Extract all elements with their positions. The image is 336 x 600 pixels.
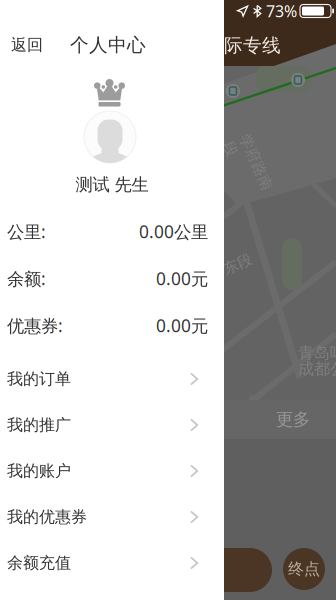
staticText: 优惠券: [7, 314, 63, 337]
staticText: 我的订单 [7, 369, 71, 389]
staticText: 余额充值 [7, 553, 71, 573]
button[interactable]: 返回 [7, 27, 47, 63]
staticText: 更多 [276, 409, 310, 430]
button[interactable]: 我的推广 [0, 402, 224, 448]
staticText: 东段 [223, 255, 253, 273]
staticText: 73% [266, 0, 297, 22]
staticText: 青岛啤 [298, 343, 336, 363]
staticText: 学府路南段 [218, 148, 278, 184]
staticText: 测试 先生 [75, 174, 148, 195]
staticText: 我的优惠券 [7, 507, 87, 527]
staticText: 公里: [7, 220, 46, 243]
staticText: 我的推广 [7, 415, 71, 435]
button[interactable]: 我的优惠券 [0, 494, 224, 540]
staticText: 国际专线 [205, 34, 281, 57]
staticText: 余额: [7, 267, 46, 290]
button[interactable]: 余额充值 [0, 540, 224, 586]
button[interactable]: 更多 [263, 400, 323, 439]
staticText: 我的账户 [7, 461, 71, 481]
staticText: 返回 [11, 35, 43, 55]
staticText: 0.00元 [156, 267, 208, 290]
staticText: 0.00公里 [139, 220, 208, 243]
button[interactable]: 我的订单 [0, 356, 224, 402]
staticText: 终点 [288, 559, 320, 579]
button[interactable]: 终点 [283, 548, 325, 590]
staticText: 0.00元 [156, 314, 208, 337]
staticText: 个人中心 [70, 33, 146, 56]
button[interactable]: 我的账户 [0, 448, 224, 494]
staticText: 成都公 [298, 359, 336, 379]
